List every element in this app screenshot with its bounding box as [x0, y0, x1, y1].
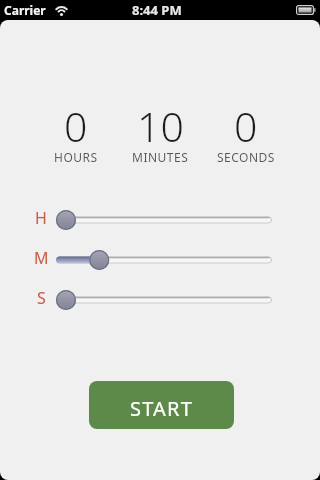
button[interactable]: START [89, 381, 234, 429]
staticText: Carrier [4, 2, 46, 18]
button[interactable]: M [0, 240, 320, 280]
staticText: START [130, 395, 194, 422]
staticText: 0 [234, 98, 258, 154]
staticText: M [34, 247, 49, 269]
staticText: S [37, 287, 46, 309]
staticText: 10 [137, 98, 184, 154]
staticText: 0 [64, 98, 88, 154]
staticText: H [35, 207, 47, 229]
staticText: SECONDS [217, 149, 275, 165]
staticText: 8:44 PM [132, 1, 182, 19]
button[interactable]: H [0, 200, 320, 240]
button[interactable]: S [0, 280, 320, 320]
staticText: HOURS [54, 149, 98, 165]
staticText: MINUTES [132, 149, 189, 165]
